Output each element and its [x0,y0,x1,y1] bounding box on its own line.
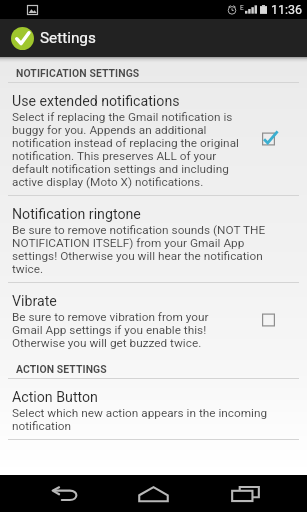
staticText: E [240,4,244,12]
staticText: NOTIFICATION SETTINGS [16,67,140,79]
button[interactable]: Vibrate [0,283,307,356]
staticText: Action Button [12,389,98,406]
button[interactable]: Settings [0,19,307,57]
staticText: Notification ringtone [12,206,141,223]
staticText: Vibrate [12,293,57,310]
staticText: Be sure to remove vibration from your Gm… [12,310,241,350]
button[interactable]: Use extended notifications [0,83,307,195]
staticText: Select which new action appears in the i… [12,406,270,433]
staticText: Be sure to remove notification sounds (N… [12,223,270,276]
staticText: ACTION SETTINGS [16,363,107,375]
staticText: Select if replacing the Gmail notificati… [12,110,241,189]
button[interactable]: Action Button [0,379,307,439]
button[interactable]: Home [126,475,181,512]
button[interactable]: Notification ringtone [0,196,307,282]
button[interactable]: Recent apps [218,475,273,512]
staticText: Settings [40,29,96,47]
staticText: Use extended notifications [12,93,180,110]
staticText: 11:36 [271,2,303,17]
button[interactable]: Back [37,475,92,512]
